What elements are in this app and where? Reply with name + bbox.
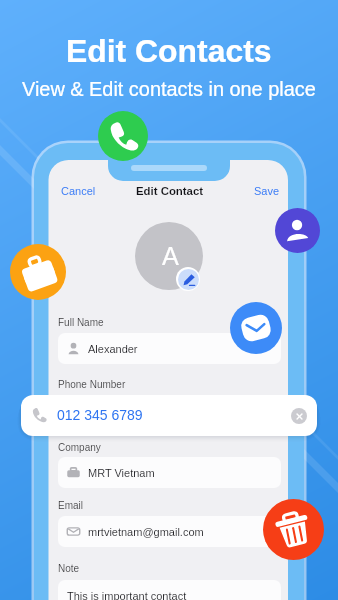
staticText: 012 345 6789 [57,407,143,423]
staticText: Note [58,563,80,574]
button[interactable]: Alexander [58,333,281,364]
staticText: This is important contact [67,590,187,600]
button[interactable]: Contacts [275,208,320,253]
button[interactable]: Edit photo [176,267,200,291]
button[interactable]: Contact photo [135,222,203,290]
staticText: Email [58,500,84,511]
staticText: Full Name [58,317,104,328]
button[interactable]: Work [10,244,66,300]
staticText: Edit Contacts [66,33,272,69]
button[interactable]: Email [230,302,282,354]
button[interactable]: This is important contact [58,580,281,600]
button[interactable]: Cancel [61,185,96,197]
staticText: Phone Number [58,379,126,390]
button[interactable]: MRT Vietnam [58,457,281,488]
button[interactable]: mrtvietnam@gmail.com [58,516,281,547]
staticText: A [162,242,179,270]
button[interactable]: Save [254,185,280,197]
staticText: mrtvietnam@gmail.com [88,526,204,538]
button[interactable]: Delete [263,499,324,560]
staticText: MRT Vietnam [88,467,155,479]
button[interactable]: Clear [291,408,307,424]
button[interactable]: 012 345 6789 [21,395,317,436]
staticText: View & Edit contacts in one place [22,78,316,100]
button[interactable]: Call [98,111,148,161]
staticText: Edit Contact [136,185,204,198]
staticText: Company [58,442,101,453]
staticText: Alexander [88,343,138,355]
